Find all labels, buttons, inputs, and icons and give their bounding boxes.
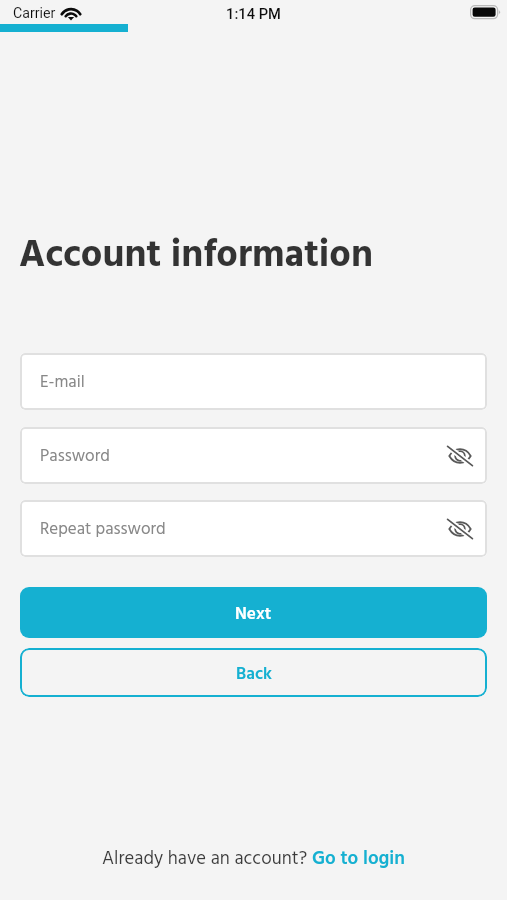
staticText: Password	[40, 443, 110, 470]
staticText: Account information	[19, 226, 373, 287]
staticText: Back	[236, 661, 272, 689]
staticText: 1:14 PM	[0, 5, 507, 22]
button[interactable]: Toggle password visibility	[443, 439, 477, 473]
button[interactable]: Next	[20, 587, 487, 638]
staticText: Next	[235, 601, 272, 629]
button[interactable]: Go to login	[312, 844, 405, 874]
button[interactable]: Repeat password	[20, 500, 487, 557]
staticText: Go to login	[312, 844, 405, 874]
button[interactable]: E-mail	[20, 353, 487, 410]
staticText: E-mail	[40, 369, 85, 396]
staticText: Carrier	[13, 5, 56, 22]
button[interactable]: Password	[20, 427, 487, 484]
button[interactable]: Back	[20, 648, 487, 697]
staticText: Repeat password	[40, 516, 166, 543]
button[interactable]: Toggle password visibility	[443, 512, 477, 546]
staticText: Already have an account?	[102, 844, 312, 874]
